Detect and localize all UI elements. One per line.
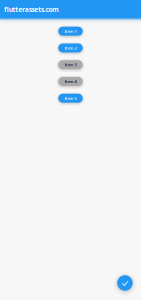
button[interactable]: Item 3: [58, 60, 83, 69]
button[interactable]: Confirm: [117, 275, 133, 291]
staticText: Item 3: [64, 62, 76, 67]
staticText: Item 2: [64, 45, 76, 51]
staticText: Item 5: [64, 95, 76, 101]
button[interactable]: Item 1: [58, 27, 83, 36]
button[interactable]: flutterassets.com: [0, 0, 141, 19]
button[interactable]: Item 5: [58, 94, 83, 103]
staticText: flutterassets.com: [4, 5, 59, 14]
button[interactable]: Item 2: [58, 43, 83, 52]
staticText: Item 1: [64, 28, 76, 34]
staticText: Item 4: [64, 79, 76, 84]
button[interactable]: Item 4: [58, 77, 83, 86]
